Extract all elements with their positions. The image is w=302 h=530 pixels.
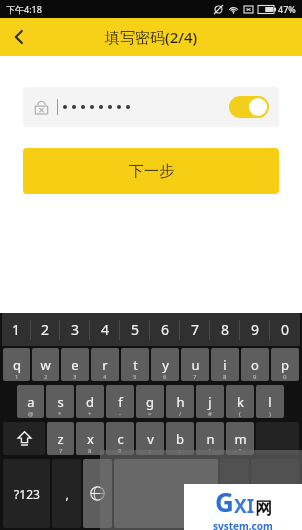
staticText: h (176, 393, 185, 411)
button[interactable]: 4 (90, 313, 120, 346)
staticText: e (71, 356, 79, 374)
staticText: 4 (101, 320, 110, 339)
button[interactable]: Back (0, 18, 38, 56)
staticText: j (208, 393, 212, 411)
staticText: ?123 (14, 486, 40, 502)
staticText: 2 (41, 320, 50, 339)
button[interactable] (251, 459, 299, 528)
button[interactable]: m (226, 422, 254, 455)
button[interactable]: d (76, 385, 104, 418)
staticText: b (176, 430, 184, 448)
staticText: 1 (15, 373, 19, 381)
button[interactable]: Show password (229, 96, 269, 118)
button[interactable]: v (136, 422, 164, 455)
staticText: s (57, 393, 64, 411)
staticText: ; (179, 447, 181, 455)
button[interactable]: i (211, 348, 239, 381)
button[interactable]: t (121, 348, 149, 381)
staticText: 3 (73, 373, 77, 381)
staticText: f (118, 393, 123, 411)
button[interactable]: Show password (23, 87, 279, 127)
button[interactable]: 8 (210, 313, 240, 346)
button[interactable]: j (196, 385, 224, 418)
staticText: . (233, 486, 237, 502)
button[interactable]: b (166, 422, 194, 455)
button[interactable]: ?123 (3, 459, 50, 528)
button[interactable]: Shift (3, 422, 45, 455)
staticText: n (206, 430, 215, 448)
button[interactable]: n (196, 422, 224, 455)
staticText: x (87, 430, 94, 448)
staticText: 2 (44, 373, 48, 381)
button[interactable]: l (256, 385, 284, 418)
staticText: " (239, 447, 242, 455)
button[interactable]: o (241, 348, 269, 381)
button[interactable]: c (106, 422, 134, 455)
staticText: u (191, 356, 200, 374)
staticText: ( (239, 410, 241, 418)
staticText: ' (209, 447, 211, 455)
staticText: 7 (191, 320, 200, 339)
staticText: 7 (59, 447, 63, 455)
staticText: 5 (131, 320, 140, 339)
button[interactable]: r (91, 348, 119, 381)
button[interactable]: y (151, 348, 179, 381)
button[interactable]: 6 (150, 313, 180, 346)
button[interactable]: , (52, 459, 81, 528)
staticText: 0 (283, 373, 287, 381)
staticText: # (208, 410, 212, 418)
staticText: z (57, 430, 64, 448)
button[interactable]: z (47, 422, 74, 455)
button[interactable]: p (271, 348, 299, 381)
staticText: G (215, 484, 234, 519)
button[interactable]: 下一步 (23, 148, 279, 194)
button[interactable]: u (181, 348, 209, 381)
button[interactable]: s (46, 385, 74, 418)
button[interactable] (114, 459, 218, 528)
staticText: r (102, 356, 108, 374)
staticText: 下午4:18 (6, 3, 42, 15)
staticText: = (148, 410, 152, 418)
button[interactable]: 7 (180, 313, 210, 346)
staticText: / (179, 410, 182, 418)
button[interactable]: a (17, 385, 44, 418)
staticText: XI (234, 493, 255, 519)
staticText: w (40, 356, 51, 374)
staticText: d (86, 393, 94, 411)
staticText: ) (269, 410, 271, 418)
staticText: t (133, 356, 138, 374)
staticText: 5 (133, 373, 137, 381)
button[interactable]: h (166, 385, 194, 418)
button[interactable]: w (32, 348, 59, 381)
button[interactable]: f (106, 385, 134, 418)
staticText: o (251, 356, 259, 374)
button[interactable]: Delete (256, 422, 299, 455)
staticText: , (65, 486, 69, 502)
staticText: - (119, 410, 121, 418)
button[interactable]: e (61, 348, 89, 381)
button[interactable]: g (136, 385, 164, 418)
staticText: l (268, 393, 272, 411)
button[interactable]: 3 (60, 313, 90, 346)
staticText: 8 (223, 373, 227, 381)
button[interactable]: 9 (240, 313, 270, 346)
staticText: 下一步 (129, 162, 174, 181)
staticText: m (234, 430, 247, 448)
staticText: 3 (71, 320, 80, 339)
staticText: 6 (161, 320, 170, 339)
button[interactable]: . (220, 459, 249, 528)
button[interactable]: 0 (270, 313, 300, 346)
button[interactable]: 5 (120, 313, 150, 346)
button[interactable]: x (76, 422, 104, 455)
staticText: i (223, 356, 227, 374)
button[interactable]: q (3, 348, 30, 381)
staticText: 6 (163, 373, 167, 381)
staticText: p (281, 356, 289, 374)
staticText: system.com (213, 519, 273, 530)
staticText: 8 (221, 320, 230, 339)
staticText: * (58, 410, 62, 418)
button[interactable]: 2 (31, 313, 60, 346)
button[interactable]: k (226, 385, 254, 418)
button[interactable]: 1 (2, 313, 31, 346)
button[interactable]: Change language (83, 459, 112, 528)
